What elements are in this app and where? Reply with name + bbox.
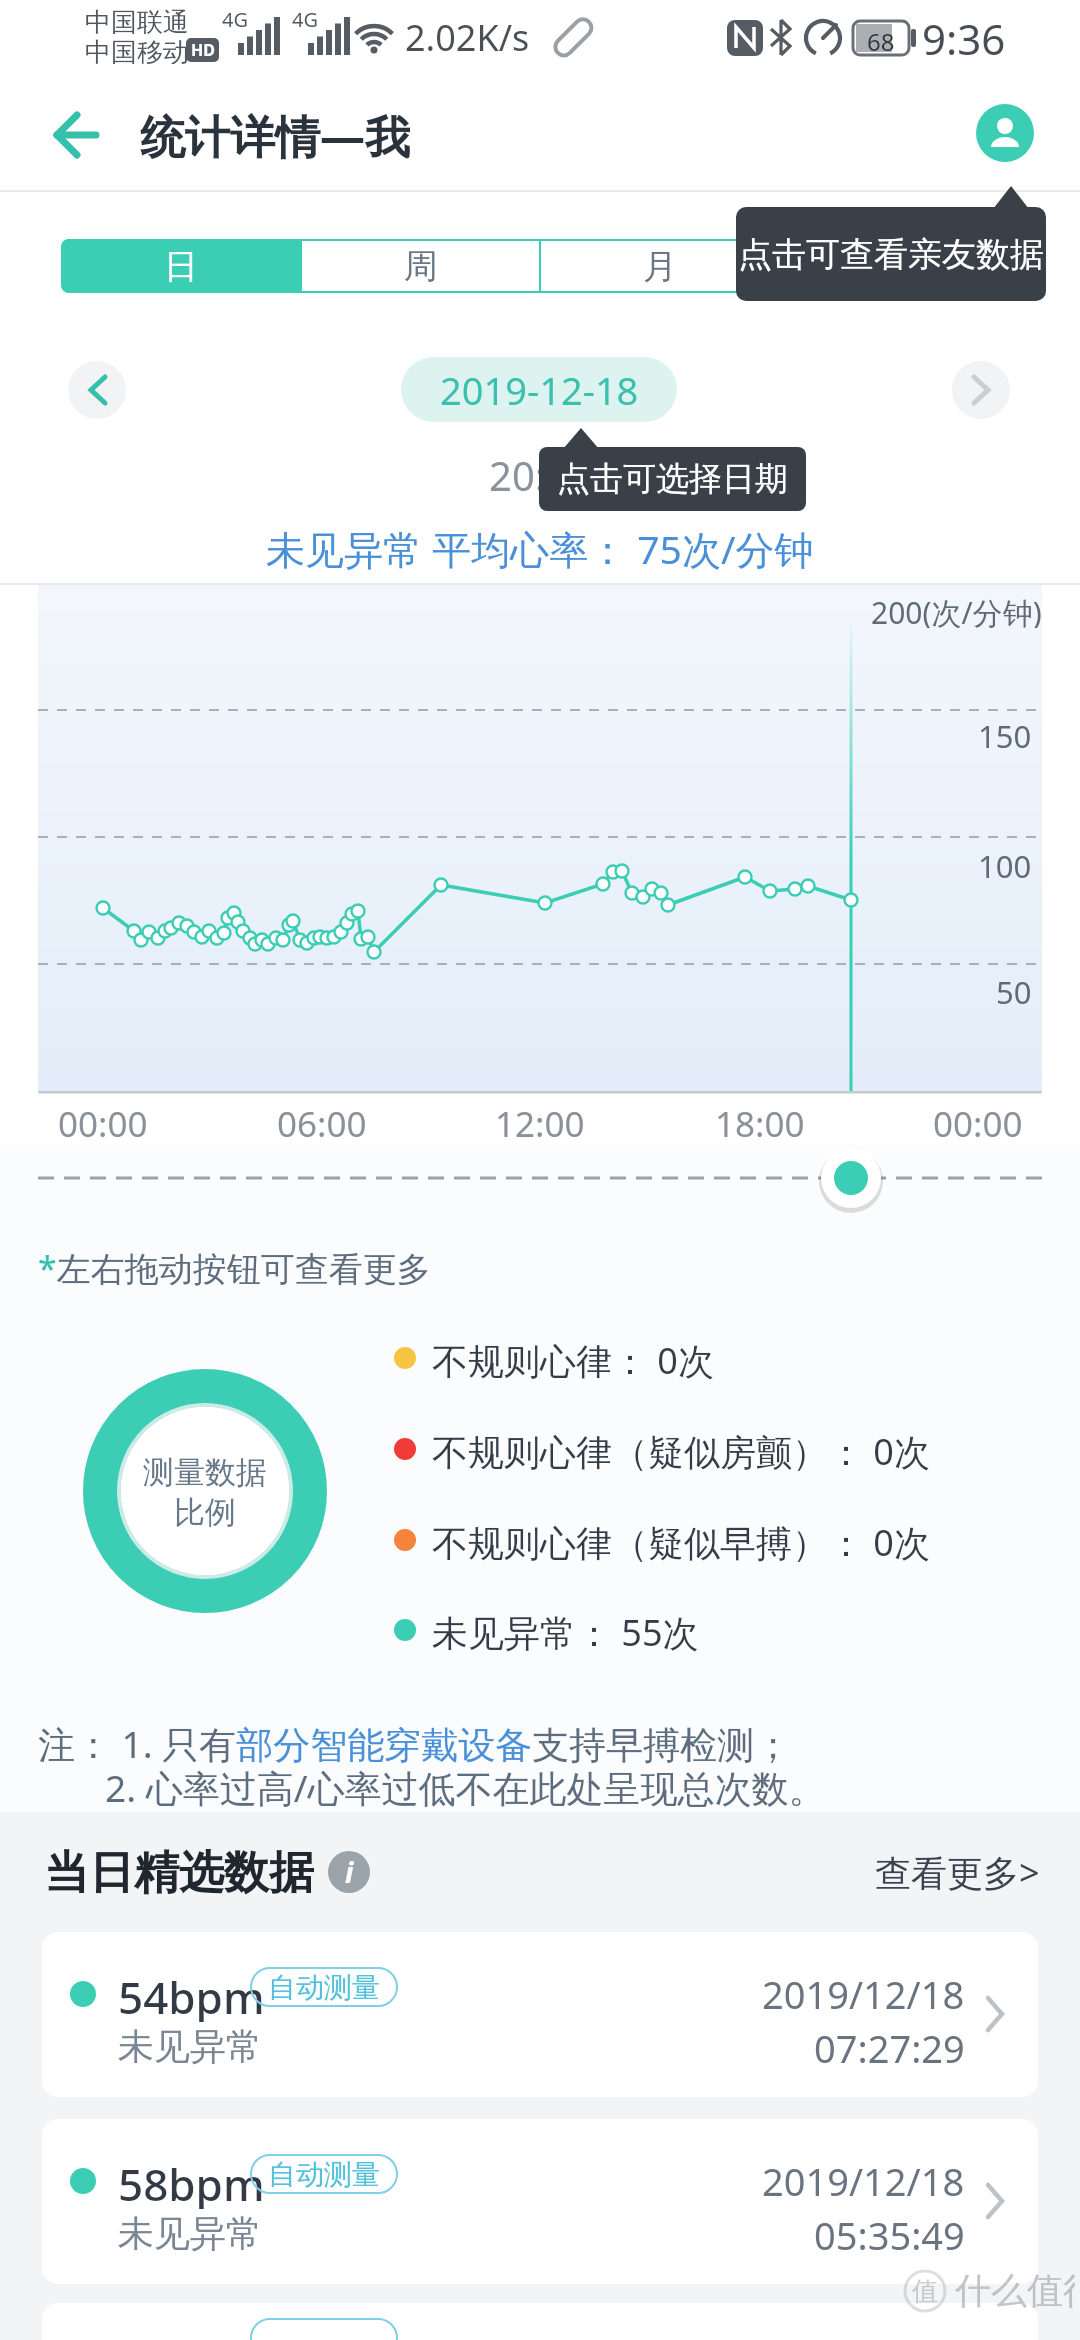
staticText: 不规则心律（疑似早搏）： 0次 [432,1518,930,1562]
staticText: 100 [978,845,1032,881]
staticText: 注： 1. 只有部分智能穿戴设备支持早搏检测； [38,1718,792,1764]
staticText: 点击可查看亲友数据 [738,233,1044,276]
button[interactable]: 查看更多> [830,1848,1040,1896]
staticText: 00:00 [58,1100,148,1140]
button[interactable]: 年 [780,239,1018,293]
staticText: 什么值得买 [955,2268,1075,2312]
staticText: 查看更多> [875,1848,1040,1896]
button[interactable] [976,104,1034,162]
staticText: 自动测量 [268,1970,380,2005]
staticText: 68 [867,25,895,53]
staticText: 未见异常： 55次 [432,1608,699,1652]
staticText: 18:00 [715,1100,805,1140]
staticText: 点击可选择日期 [557,458,788,500]
staticText: 50 [996,971,1032,1007]
staticText: 未见异常 [118,2211,262,2256]
button[interactable] [821,1148,881,1208]
staticText: 2019/12/18 [762,1968,965,2014]
staticText: 值 [912,2275,938,2308]
button[interactable]: 日 [61,239,300,293]
button[interactable] [68,361,126,419]
button[interactable]: 月 [541,239,778,293]
staticText: 周 [404,245,438,288]
staticText: 4G [222,6,248,28]
staticText: 未见异常 平均心率： 75次/分钟 [266,522,814,572]
staticText: 比例 [174,1493,236,1532]
staticText: 中国联通 [85,6,189,34]
staticText: 4G [292,6,318,28]
staticText: 20:33 [489,448,592,494]
button[interactable] [40,105,110,165]
staticText: 07:27:29 [814,2022,965,2068]
staticText: 未见异常 [118,2024,262,2069]
staticText: 日 [164,245,198,288]
staticText: 测量数据 [143,1453,267,1492]
staticText: 自动测量 [268,2157,380,2192]
staticText: 2. 心率过高/心率过低不在此处呈现总次数。 [105,1762,826,1808]
button[interactable] [42,2303,1038,2340]
button[interactable]: 2019-12-18 [401,357,677,422]
staticText: 06:00 [277,1100,367,1140]
staticText: 200(次/分钟) [871,592,1042,628]
staticText: i [345,1853,354,1891]
button[interactable] [952,361,1010,419]
staticText: 统计详情—我 [140,105,411,165]
staticText: 月 [643,245,677,288]
staticText: 2019-12-18 [440,364,639,416]
staticText: 54bpm [118,1967,265,2022]
staticText: 中国移动 [85,36,189,64]
staticText: 当日精选数据 [44,1845,314,1901]
button[interactable]: 周 [302,239,539,293]
staticText: 58bpm [118,2154,265,2209]
staticText: 00:00 [933,1100,1023,1140]
button[interactable]: 58bpm [42,2119,1038,2284]
staticText: 年 [882,245,916,288]
staticText: 150 [978,715,1032,751]
staticText: 不规则心律： 0次 [432,1336,714,1380]
staticText: HD [191,39,215,61]
staticText: 12:00 [495,1100,585,1140]
staticText: 9:36 [922,10,1006,66]
staticText: *左右拖动按钮可查看更多 [38,1245,431,1289]
button[interactable]: 54bpm [42,1932,1038,2097]
staticText: 2.02K/s [405,13,530,62]
staticText: 2019/12/18 [762,2155,965,2201]
staticText: 05:35:49 [814,2209,965,2255]
staticText: 不规则心律（疑似房颤）： 0次 [432,1427,930,1471]
